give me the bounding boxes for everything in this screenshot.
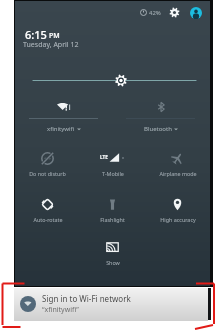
staticText: Auto-rotate [33, 216, 63, 223]
staticText: 6:15 [25, 27, 47, 42]
staticText: Sign in to Wi-Fi network [42, 293, 131, 304]
staticText: LTE [100, 154, 108, 160]
staticText: “xfinitywifi” [42, 305, 79, 315]
button[interactable]: High accuracy [145, 198, 210, 238]
button[interactable]: LTE [80, 152, 145, 192]
staticText: High accuracy [160, 216, 196, 223]
button[interactable]: xfinitywifi [15, 95, 112, 133]
button[interactable]: Airplane mode [145, 152, 210, 192]
button[interactable]: Do not disturb [15, 152, 80, 192]
button[interactable]: User account [190, 7, 202, 19]
staticText: xfinitywifi [47, 125, 75, 133]
staticText: Airplane mode [159, 170, 197, 177]
button[interactable]: Flashlight [80, 198, 145, 238]
staticText: 42% [149, 9, 161, 17]
staticText: Tuesday, April 12 [23, 40, 79, 50]
button[interactable]: Settings [169, 7, 180, 18]
staticText: PM [49, 31, 60, 41]
button[interactable]: Sign in to Wi-Fi network [14, 288, 208, 321]
button[interactable]: Bluetooth [112, 95, 209, 133]
button[interactable]: Show [80, 241, 145, 281]
button[interactable]: Auto-rotate [15, 198, 80, 238]
staticText: Bluetooth [144, 125, 172, 133]
staticText: Do not disturb [29, 170, 66, 177]
staticText: Show [106, 259, 120, 266]
staticText: T-Mobile [102, 170, 124, 177]
staticText: Flashlight [100, 216, 125, 223]
